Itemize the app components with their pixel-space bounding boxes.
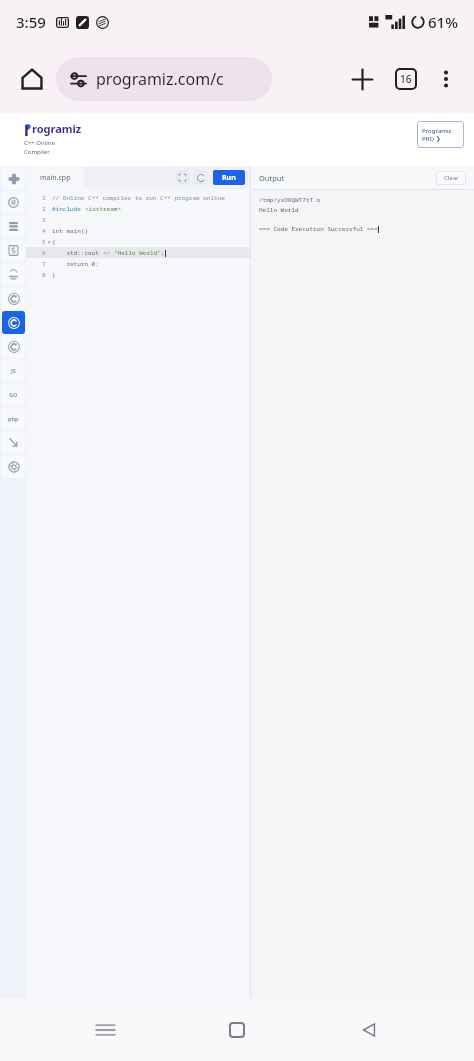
button[interactable]: main.cpp (26, 166, 84, 189)
staticText: /tmp/yxD8QWT7tT.o (259, 196, 321, 204)
staticText: php (8, 415, 19, 422)
staticText: std::cout (52, 249, 103, 257)
button[interactable]: Home (210, 1003, 264, 1057)
button[interactable]: Switch tabs, 16 open (388, 61, 424, 97)
staticText: Run (222, 173, 236, 183)
staticText: "Hello World" (114, 249, 161, 257)
staticText: Programiz (422, 127, 452, 135)
staticText: << (103, 249, 114, 257)
button[interactable]: Home (14, 61, 50, 97)
staticText: Compiler (24, 148, 50, 156)
staticText: 8 (42, 271, 46, 279)
button[interactable]: Recent apps (78, 1003, 132, 1057)
staticText: // Online C++ compiler to run C++ progra… (52, 194, 225, 202)
staticText: programiz.com/c (96, 68, 224, 90)
staticText: PRO ❯ (422, 135, 441, 143)
staticText: Clear (444, 174, 459, 182)
button[interactable]: Run (213, 170, 245, 185)
staticText: JS (11, 367, 16, 374)
button[interactable]: More options (428, 61, 464, 97)
button[interactable]: JavaScript (2, 359, 25, 382)
button[interactable]: Programiz (417, 121, 464, 148)
button[interactable]: Go (2, 383, 25, 406)
staticText: 16 (400, 72, 412, 86)
button[interactable]: Java (2, 263, 25, 286)
staticText: ; (161, 249, 165, 257)
staticText: int main() (52, 227, 89, 235)
button[interactable]: C++ (2, 311, 25, 334)
button[interactable]: SQL (2, 215, 25, 238)
staticText: 6 (42, 249, 46, 257)
button[interactable]: Back (342, 1003, 396, 1057)
staticText: { (52, 238, 56, 246)
staticText: 61% (428, 12, 458, 32)
staticText: ▾ (48, 239, 51, 245)
staticText: rogramiz (32, 121, 82, 136)
button[interactable]: HTML (2, 239, 25, 262)
staticText: 1 (42, 194, 46, 202)
staticText: GO (9, 391, 18, 398)
staticText: 3 (42, 216, 46, 224)
staticText: Output (259, 173, 285, 183)
staticText: C++ Online (24, 139, 55, 147)
staticText: Hello World (259, 206, 299, 214)
staticText: 3:59 (16, 12, 46, 32)
button[interactable]: R (2, 191, 25, 214)
button[interactable]: C (2, 287, 25, 310)
button[interactable]: Clear (436, 171, 466, 185)
staticText: } (52, 271, 56, 279)
button[interactable]: Dark mode (194, 171, 207, 184)
button[interactable]: Swift (2, 431, 25, 454)
button[interactable]: C# (2, 335, 25, 358)
staticText: main.cpp (40, 173, 71, 183)
staticText: 5 (42, 238, 46, 246)
button[interactable]: PHP (2, 407, 25, 430)
staticText: <iostream> (85, 205, 122, 213)
staticText: #include (52, 205, 85, 213)
button[interactable]: Rust (2, 455, 25, 478)
staticText: 2 (42, 205, 46, 213)
button[interactable]: New tab (344, 61, 380, 97)
button[interactable]: Python (2, 167, 25, 190)
button[interactable]: Fullscreen (176, 171, 189, 184)
staticText: 7 (42, 260, 46, 268)
staticText: return 0; (52, 260, 99, 268)
staticText: 4 (42, 227, 46, 235)
staticText: === Code Execution Successful === (259, 225, 378, 233)
button[interactable]: programiz.com/c (56, 57, 272, 101)
